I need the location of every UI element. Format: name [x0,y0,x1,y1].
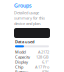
staticText: Battery [15,69,28,72]
staticText: Groups [14,2,32,9]
staticText: 6.1" [42,59,49,64]
button[interactable]: Groups [14,2,32,9]
staticText: Capacity [15,54,30,59]
staticText: A2172 [38,49,49,54]
staticText: Data used [15,39,35,44]
staticText: 128 GB [36,54,49,59]
staticText: Chip [15,64,23,69]
staticText: 87% [42,69,49,72]
staticText: A17 Pro [35,64,49,69]
staticText: Display [15,59,28,64]
staticText: Detailed usage summary for this device a… [14,10,45,26]
staticText: Model [15,49,26,54]
